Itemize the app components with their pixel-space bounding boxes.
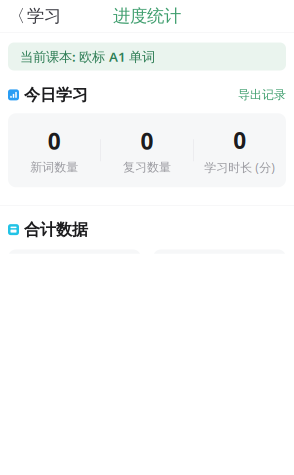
staticText: 新词数量 <box>30 160 78 175</box>
staticText: 学习时长 (分) <box>204 159 275 175</box>
staticText: 0 <box>48 126 61 156</box>
staticText: 复习数量 <box>123 160 171 175</box>
staticText: 0 <box>233 125 246 155</box>
button[interactable]: 导出记录 <box>238 84 286 105</box>
staticText: 0 <box>140 126 153 156</box>
staticText: 当前课本: 欧标 A1 单词 <box>20 48 155 65</box>
staticText: 今日学习 <box>24 85 88 105</box>
button[interactable]: 〈 <box>2 1 67 31</box>
staticText: 〈 <box>8 5 25 27</box>
staticText: 学习 <box>27 5 61 27</box>
staticText: 合计数据 <box>24 220 88 239</box>
staticText: 导出记录 <box>238 87 286 102</box>
staticText: 进度统计 <box>113 5 181 27</box>
